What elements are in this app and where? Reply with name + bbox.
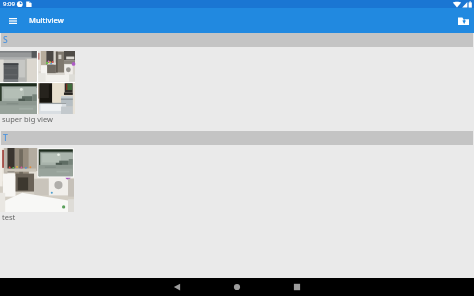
button[interactable]: test: [0, 145, 474, 225]
staticText: T: [3, 132, 8, 144]
staticText: test: [2, 212, 16, 222]
staticText: super big view: [2, 114, 53, 124]
button[interactable]: Back: [147, 278, 207, 296]
staticText: 9:09: [3, 0, 15, 8]
button[interactable]: Open navigation drawer: [6, 14, 20, 28]
staticText: Multiview: [29, 15, 64, 25]
button[interactable]: Folders: [456, 14, 470, 28]
staticText: S: [3, 34, 8, 46]
button[interactable]: Home: [207, 278, 267, 296]
button[interactable]: Recent apps: [267, 278, 327, 296]
button[interactable]: super big view: [0, 47, 474, 131]
